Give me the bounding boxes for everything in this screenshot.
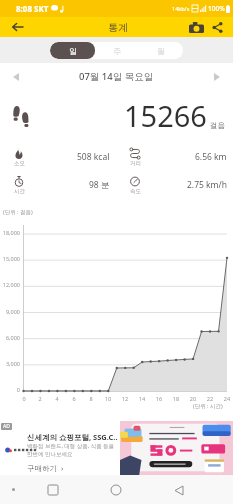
button[interactable]: Next day	[209, 69, 225, 85]
button[interactable]: 일	[50, 42, 95, 59]
staticText: 24	[220, 395, 233, 402]
staticText: 8:08 SKT	[16, 3, 49, 14]
button[interactable]: AD	[0, 421, 233, 475]
staticText: 14	[135, 395, 149, 402]
staticText: 12,000	[0, 281, 20, 288]
button[interactable]: Screenshot	[182, 17, 211, 37]
staticText: 속도	[130, 188, 141, 195]
staticText: 6,000	[0, 334, 20, 341]
button[interactable]: 월	[139, 42, 183, 59]
staticText: 18,000	[0, 229, 20, 236]
button[interactable]: Recents	[41, 478, 65, 502]
staticText: 18	[169, 395, 183, 402]
staticText: 10	[101, 395, 115, 402]
staticText: (단위 : 시간)	[193, 402, 223, 410]
staticText: 2.75 km/h	[187, 179, 227, 191]
staticText: 8	[84, 395, 98, 402]
button[interactable]: 주	[95, 42, 139, 59]
staticText: 6	[67, 395, 81, 402]
staticText: 월	[157, 46, 165, 56]
button[interactable]: Back	[2, 17, 32, 37]
staticText: 시간	[14, 188, 25, 195]
staticText: 15266	[124, 96, 207, 135]
staticText: 주	[113, 46, 121, 56]
staticText: 4	[50, 395, 64, 402]
staticText: 9,000	[0, 308, 20, 315]
staticText: 백화점 브랜드, 대형 상품, 식품 등을	[27, 442, 115, 450]
staticText: 07월 14일 목요일	[79, 70, 154, 83]
staticText: (단위 : 걸음)	[3, 208, 33, 216]
staticText: 일	[69, 46, 77, 56]
staticText: 0	[17, 395, 31, 402]
staticText: 구매하기 ›	[27, 463, 64, 473]
staticText: 20	[186, 395, 200, 402]
staticText: 거리	[130, 160, 141, 167]
button[interactable]: Back	[167, 478, 191, 502]
staticText: 신세계의 쇼핑포털, SSG.C..	[27, 432, 118, 442]
staticText: 14kb/s	[172, 5, 190, 12]
staticText: 3,000	[0, 360, 20, 367]
button[interactable]: Home	[104, 478, 128, 502]
staticText: 100%	[208, 4, 225, 13]
button[interactable]: Share	[206, 17, 229, 37]
staticText: AD	[3, 423, 10, 430]
staticText: 15,000	[0, 255, 20, 262]
staticText: 2	[33, 395, 47, 402]
staticText: 16	[152, 395, 166, 402]
staticText: 0	[0, 386, 20, 393]
staticText: 22	[203, 395, 217, 402]
staticText: 98 분	[89, 179, 110, 191]
staticText: 소모	[14, 160, 25, 167]
staticText: 6.56 km	[195, 151, 227, 163]
staticText: 508 kcal	[77, 151, 110, 163]
staticText: 12	[118, 395, 132, 402]
staticText: 걸음	[210, 121, 225, 130]
staticText: 통계	[108, 21, 128, 34]
button[interactable]: Previous day	[8, 69, 24, 85]
staticText: 한번에 만나보세요	[27, 450, 73, 458]
